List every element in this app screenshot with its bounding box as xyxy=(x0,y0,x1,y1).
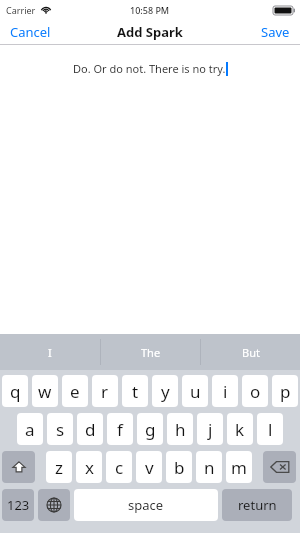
staticText: Carrier xyxy=(6,4,36,16)
staticText: o xyxy=(250,380,261,403)
button[interactable]: x xyxy=(76,451,102,483)
button[interactable]: b xyxy=(166,451,192,483)
staticText: return xyxy=(238,496,277,514)
button[interactable]: q xyxy=(2,375,28,407)
button[interactable]: t xyxy=(122,375,148,407)
staticText: Do. Or do not. There is no try. xyxy=(73,61,226,76)
button[interactable]: c xyxy=(106,451,132,483)
staticText: d xyxy=(85,418,96,441)
staticText: s xyxy=(56,418,65,441)
staticText: 10:58 PM xyxy=(130,4,170,16)
staticText: p xyxy=(280,380,291,403)
button[interactable]: h xyxy=(167,413,193,445)
button[interactable]: e xyxy=(62,375,88,407)
staticText: i xyxy=(223,380,228,403)
staticText: Add Spark xyxy=(117,23,183,41)
staticText: u xyxy=(190,380,201,403)
staticText: v xyxy=(145,456,154,479)
staticText: Cancel xyxy=(10,23,51,41)
button[interactable]: y xyxy=(152,375,178,407)
staticText: f xyxy=(117,418,123,441)
button[interactable]: return xyxy=(222,489,292,521)
button[interactable]: o xyxy=(242,375,268,407)
button[interactable]: Shift xyxy=(2,451,35,483)
button[interactable]: s xyxy=(47,413,73,445)
button[interactable]: a xyxy=(17,413,43,445)
staticText: t xyxy=(132,380,139,403)
staticText: j xyxy=(208,418,213,441)
button[interactable]: w xyxy=(32,375,58,407)
button[interactable]: n xyxy=(196,451,222,483)
button[interactable]: The xyxy=(101,334,200,370)
staticText: q xyxy=(10,380,21,403)
button[interactable]: j xyxy=(197,413,223,445)
button[interactable]: k xyxy=(227,413,253,445)
staticText: c xyxy=(115,456,124,479)
staticText: h xyxy=(175,418,186,441)
button[interactable]: Backspace xyxy=(263,451,296,483)
button[interactable]: Save xyxy=(251,20,300,44)
staticText: r xyxy=(101,380,109,403)
staticText: space xyxy=(128,496,164,514)
button[interactable]: r xyxy=(92,375,118,407)
staticText: But xyxy=(242,345,260,360)
button[interactable]: Cancel xyxy=(0,20,61,44)
button[interactable]: space xyxy=(74,489,218,521)
staticText: e xyxy=(70,380,80,403)
staticText: z xyxy=(55,456,63,479)
button[interactable]: I xyxy=(0,334,100,370)
button[interactable]: 123 xyxy=(2,489,34,521)
button[interactable]: f xyxy=(107,413,133,445)
staticText: b xyxy=(174,456,185,479)
staticText: I xyxy=(48,345,52,360)
button[interactable]: u xyxy=(182,375,208,407)
staticText: n xyxy=(204,456,215,479)
button[interactable]: l xyxy=(257,413,283,445)
button[interactable]: d xyxy=(77,413,103,445)
button[interactable]: i xyxy=(212,375,238,407)
button[interactable]: But xyxy=(201,334,300,370)
button[interactable]: Switch keyboard xyxy=(38,489,70,521)
staticText: Save xyxy=(261,23,290,41)
staticText: a xyxy=(25,418,35,441)
staticText: g xyxy=(145,418,156,441)
button[interactable]: g xyxy=(137,413,163,445)
staticText: The xyxy=(141,345,161,360)
staticText: x xyxy=(85,456,94,479)
button[interactable]: v xyxy=(136,451,162,483)
button[interactable]: p xyxy=(272,375,298,407)
staticText: m xyxy=(231,456,247,479)
button[interactable]: z xyxy=(46,451,72,483)
staticText: k xyxy=(235,418,245,441)
staticText: y xyxy=(161,380,170,403)
staticText: l xyxy=(268,418,273,441)
button[interactable]: m xyxy=(226,451,252,483)
staticText: 123 xyxy=(7,496,30,514)
staticText: w xyxy=(38,380,52,403)
